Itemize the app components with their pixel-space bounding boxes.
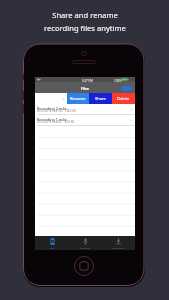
button[interactable]: Recorder	[69, 236, 102, 250]
staticText: 2016/02/18 12:41:05 108.2 KB	[37, 109, 76, 113]
staticText: Recording 2.m4a	[37, 106, 67, 111]
button[interactable]: Recording 1.m4a	[35, 115, 135, 126]
staticText: Rename	[70, 96, 86, 101]
staticText: 100%	[114, 79, 122, 82]
button[interactable]: Share	[89, 93, 112, 104]
staticText: Files	[81, 86, 89, 91]
staticText: 5:27 PM	[82, 79, 93, 82]
button[interactable]: Recording 2.m4a	[35, 104, 135, 115]
staticText: Share and rename	[52, 10, 118, 20]
staticText: Delete	[117, 96, 130, 101]
staticText: Downloads	[112, 246, 125, 249]
staticText: 2016/02/18 12:40:01 40.9 KB	[37, 120, 75, 124]
staticText: Files	[50, 246, 55, 249]
staticText: Share	[95, 96, 106, 101]
staticText: recording files anytime	[44, 23, 126, 33]
button[interactable]: Delete	[112, 93, 135, 104]
button[interactable]: Rename	[67, 93, 89, 104]
button[interactable]: Done	[121, 86, 132, 91]
staticText: Recording 1.m4a	[37, 117, 67, 122]
button[interactable]: Downloads	[102, 236, 135, 250]
button[interactable]: Files	[35, 236, 69, 250]
staticText: Recorder	[80, 246, 91, 249]
